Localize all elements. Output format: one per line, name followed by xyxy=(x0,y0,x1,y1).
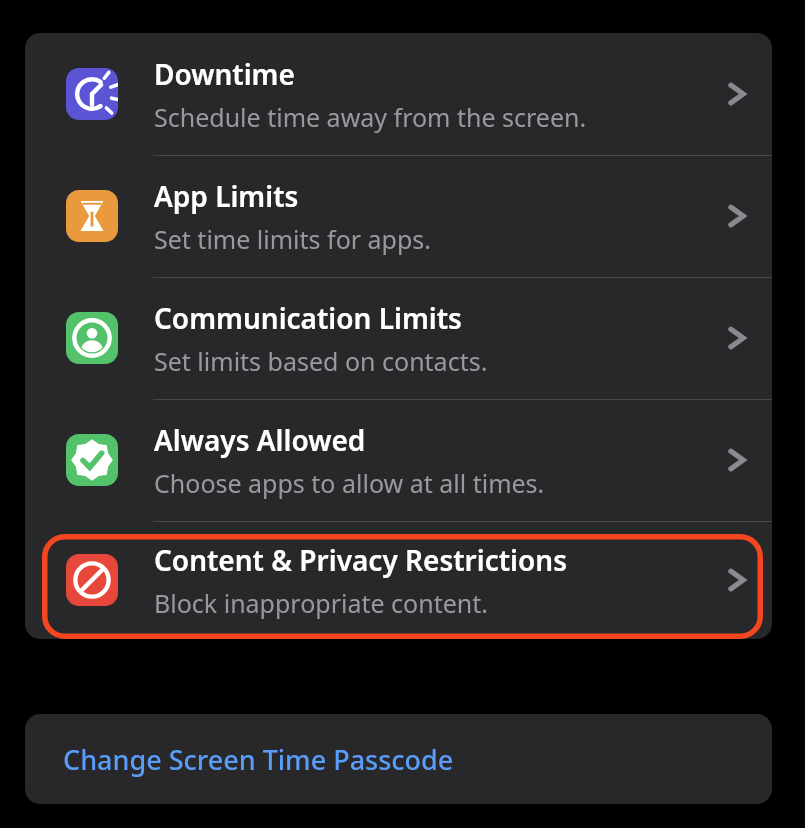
staticText: Set time limits for apps. xyxy=(154,222,432,256)
staticText: Always Allowed xyxy=(154,421,366,459)
staticText: Downtime xyxy=(154,55,295,93)
button[interactable]: Always Allowed xyxy=(25,399,772,521)
staticText: Change Screen Time Passcode xyxy=(63,741,454,778)
staticText: Schedule time away from the screen. xyxy=(154,100,587,134)
staticText: Content & Privacy Restrictions xyxy=(154,541,567,579)
staticText: Set limits based on contacts. xyxy=(154,344,488,378)
button[interactable]: Content & Privacy Restrictions xyxy=(25,521,772,639)
button[interactable]: Communication Limits xyxy=(25,277,772,399)
button[interactable]: App Limits xyxy=(25,155,772,277)
button[interactable]: Change Screen Time Passcode xyxy=(25,714,772,804)
staticText: Block inappropriate content. xyxy=(154,586,488,620)
button[interactable]: Downtime xyxy=(25,33,772,155)
staticText: App Limits xyxy=(154,177,299,215)
staticText: Choose apps to allow at all times. xyxy=(154,466,545,500)
staticText: Communication Limits xyxy=(154,299,462,337)
